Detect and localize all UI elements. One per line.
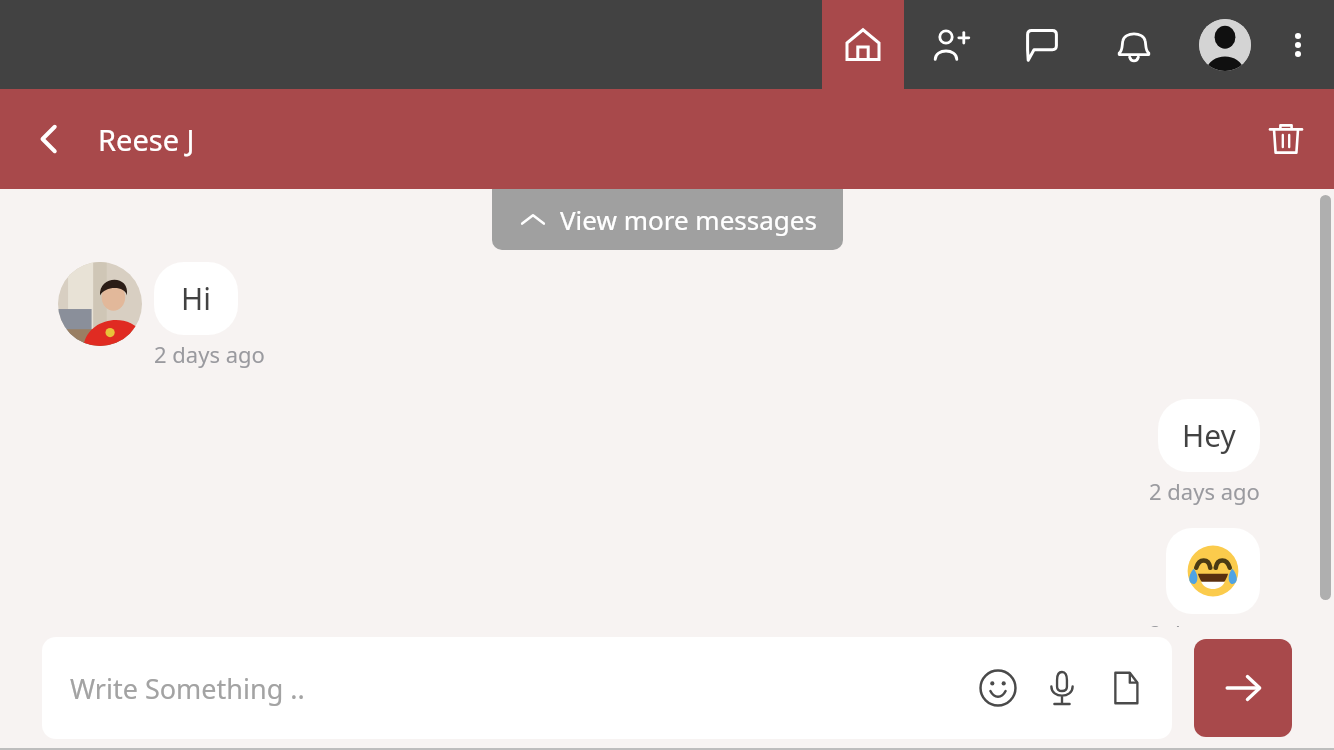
button[interactable]: Notifications <box>1088 0 1180 89</box>
button[interactable]: Profile <box>1180 0 1270 89</box>
staticText: 2 days ago <box>1149 476 1260 506</box>
button[interactable]: Delete conversation <box>1238 89 1334 189</box>
staticText: Hey <box>1182 415 1236 456</box>
button[interactable]: Insert emoji <box>968 658 1028 718</box>
staticText: Write Something .. <box>70 670 305 707</box>
button[interactable]: More options <box>1270 0 1326 89</box>
button[interactable]: View more messages <box>492 189 843 250</box>
button[interactable]: Record voice message <box>1032 658 1092 718</box>
staticText: View more messages <box>560 202 817 237</box>
button[interactable]: Messages <box>996 0 1088 89</box>
button[interactable]: Add friend <box>904 0 996 89</box>
button[interactable]: Hi <box>154 262 238 335</box>
button[interactable]: Home <box>822 0 904 89</box>
staticText: Hi <box>181 278 211 319</box>
staticText: Reese J <box>98 120 195 159</box>
staticText: 2 days ago <box>154 339 265 369</box>
button[interactable]: Hey <box>1158 399 1260 472</box>
button[interactable] <box>1166 528 1260 614</box>
button[interactable]: Send <box>1194 639 1292 737</box>
staticText: 2 days ago <box>1149 618 1260 627</box>
button[interactable]: Attach file <box>1096 658 1156 718</box>
button[interactable]: Write Something .. <box>42 637 1172 739</box>
button[interactable]: Back <box>0 89 98 189</box>
